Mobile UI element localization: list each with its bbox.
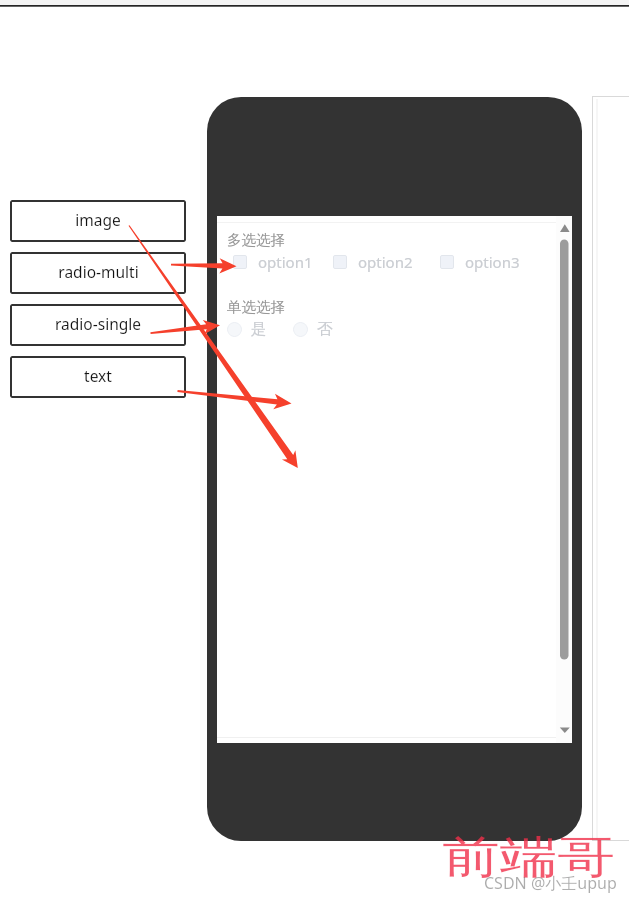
staticText: CSDN @小壬upup [484, 872, 617, 894]
staticText: option2 [358, 252, 413, 272]
button[interactable]: text [10, 356, 186, 398]
button[interactable]: option2 [333, 252, 413, 272]
staticText: option3 [465, 252, 520, 272]
staticText: 单选选择 [227, 298, 285, 316]
button[interactable]: image [10, 200, 186, 242]
button[interactable]: radio-multi [10, 252, 186, 294]
button[interactable]: 是 [227, 319, 267, 339]
button[interactable]: 否 [293, 319, 333, 339]
staticText: radio-multi [58, 261, 139, 282]
button[interactable]: option3 [440, 252, 520, 272]
staticText: image [75, 209, 121, 230]
button[interactable]: Scroll down [556, 725, 572, 743]
button[interactable]: option1 [233, 252, 313, 272]
staticText: radio-single [55, 313, 141, 334]
staticText: text [84, 365, 112, 386]
button[interactable]: radio-single [10, 304, 186, 346]
staticText: 是 [251, 319, 267, 339]
staticText: option1 [258, 252, 313, 272]
staticText: 否 [317, 319, 333, 339]
staticText: 前端哥 [442, 829, 615, 884]
staticText: 多选选择 [227, 231, 285, 249]
button[interactable]: Scroll up [556, 216, 572, 234]
